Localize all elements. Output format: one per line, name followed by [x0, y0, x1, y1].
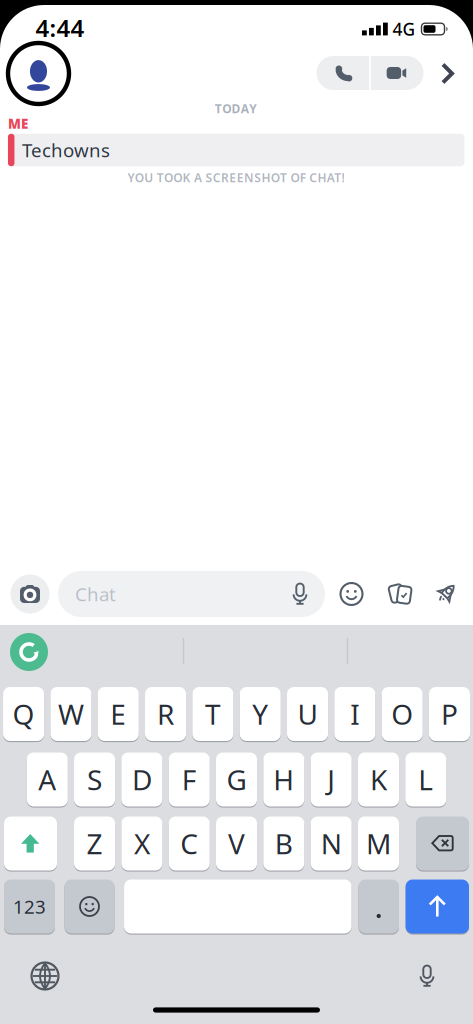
button[interactable]: M — [358, 815, 399, 871]
button[interactable]: D — [121, 751, 162, 807]
button[interactable]: More — [440, 62, 456, 84]
staticText: Z — [87, 825, 103, 862]
staticText: D — [132, 761, 152, 798]
staticText: A — [38, 761, 56, 798]
staticText: S — [87, 761, 102, 798]
button[interactable]: E — [98, 686, 139, 742]
button[interactable]: Shift — [4, 815, 57, 871]
staticText: 4G — [392, 17, 415, 40]
staticText: ME — [8, 115, 28, 132]
staticText: R — [157, 695, 174, 733]
button[interactable]: Camera — [8, 572, 52, 616]
staticText: G — [226, 761, 246, 798]
staticText: J — [327, 761, 335, 798]
staticText: O — [391, 695, 413, 733]
staticText: 123 — [13, 894, 46, 919]
button[interactable]: Send — [406, 878, 469, 934]
staticText: V — [228, 825, 245, 862]
button[interactable]: Q — [3, 686, 44, 742]
staticText: YOU TOOK A SCREENSHOT OF CHAT! — [128, 169, 344, 185]
button[interactable]: J — [311, 751, 352, 807]
button[interactable]: Stickers — [385, 578, 417, 610]
staticText: K — [370, 761, 387, 798]
button[interactable]: V — [216, 815, 257, 871]
staticText: M — [366, 825, 391, 862]
button[interactable]: R — [145, 686, 186, 742]
staticText: B — [275, 825, 293, 862]
button[interactable]: Call — [317, 56, 370, 90]
button[interactable]: Grammarly — [8, 631, 50, 673]
button[interactable]: Emoji — [336, 579, 366, 609]
button[interactable]: T — [192, 686, 233, 742]
staticText: Techowns — [22, 138, 110, 162]
button[interactable]: K — [358, 751, 399, 807]
staticText: Q — [13, 695, 35, 733]
staticText: L — [418, 761, 433, 798]
staticText: TODAY — [215, 100, 257, 116]
button[interactable]: U — [287, 686, 328, 742]
button[interactable]: Period — [358, 878, 399, 934]
staticText: Chat — [75, 582, 116, 606]
staticText: X — [134, 825, 150, 862]
staticText: N — [321, 825, 342, 862]
staticText: P — [441, 695, 458, 733]
button[interactable]: I — [334, 686, 375, 742]
button[interactable]: Delete — [416, 815, 469, 871]
button[interactable]: S — [74, 751, 115, 807]
button[interactable]: P — [429, 686, 470, 742]
button[interactable]: Dictation — [415, 963, 439, 989]
staticText: T — [205, 695, 221, 733]
button[interactable]: F — [169, 751, 210, 807]
staticText: E — [110, 695, 126, 733]
staticText: F — [182, 761, 197, 798]
staticText: I — [350, 695, 359, 733]
button[interactable]: Profile — [5, 40, 71, 106]
staticText: 4:44 — [35, 12, 84, 44]
button[interactable]: N — [311, 815, 352, 871]
staticText: Y — [252, 695, 268, 733]
staticText: U — [297, 695, 317, 733]
button[interactable]: Chat — [58, 571, 325, 617]
button[interactable]: Numbers — [4, 878, 55, 934]
button[interactable]: W — [50, 686, 91, 742]
button[interactable]: L — [405, 751, 446, 807]
button[interactable]: Games — [430, 578, 462, 610]
button[interactable]: C — [169, 815, 210, 871]
button[interactable]: Z — [74, 815, 115, 871]
button[interactable]: Y — [240, 686, 281, 742]
staticText: W — [58, 695, 84, 733]
button[interactable]: A — [27, 751, 68, 807]
button[interactable]: H — [263, 751, 304, 807]
button[interactable]: X — [121, 815, 162, 871]
button[interactable]: Switch keyboard — [28, 959, 62, 993]
button[interactable]: Video call — [370, 56, 423, 90]
staticText: H — [273, 761, 294, 798]
button[interactable]: G — [216, 751, 257, 807]
button[interactable]: B — [263, 815, 304, 871]
staticText: C — [180, 825, 198, 862]
button[interactable]: Space — [124, 878, 352, 934]
button[interactable]: Emoji — [64, 878, 114, 934]
button[interactable]: O — [382, 686, 423, 742]
